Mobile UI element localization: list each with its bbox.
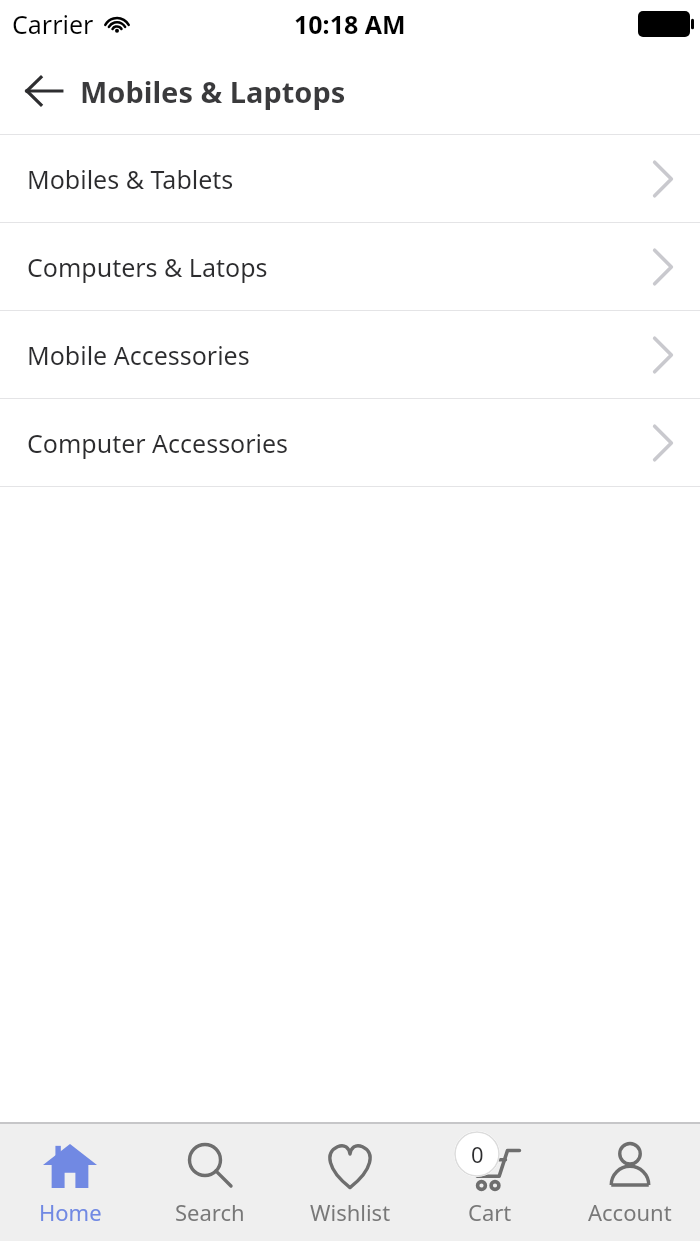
- staticText: Mobiles & Laptops: [80, 72, 346, 111]
- staticText: Cart: [468, 1197, 512, 1227]
- button[interactable]: Computer Accessories: [0, 399, 700, 486]
- staticText: Computer Accessories: [27, 426, 289, 460]
- button[interactable]: Wishlist: [280, 1124, 420, 1241]
- button[interactable]: Search: [140, 1124, 280, 1241]
- staticText: 10:18 AM: [294, 7, 406, 41]
- button[interactable]: Account: [560, 1124, 700, 1241]
- button[interactable]: Mobile Accessories: [0, 311, 700, 398]
- staticText: Carrier: [12, 7, 94, 41]
- staticText: Home: [39, 1197, 102, 1227]
- button[interactable]: 0: [420, 1124, 560, 1241]
- staticText: 0: [471, 1139, 484, 1169]
- staticText: Computers & Latops: [27, 250, 268, 284]
- button[interactable]: Mobiles & Tablets: [0, 135, 700, 222]
- staticText: Search: [175, 1197, 245, 1227]
- staticText: Wishlist: [310, 1197, 391, 1227]
- staticText: Mobiles & Tablets: [27, 162, 234, 196]
- staticText: Mobile Accessories: [27, 338, 250, 372]
- staticText: Account: [588, 1197, 672, 1227]
- button[interactable]: Home: [0, 1124, 140, 1241]
- button[interactable]: Computers & Latops: [0, 223, 700, 310]
- button[interactable]: Back: [14, 61, 74, 121]
